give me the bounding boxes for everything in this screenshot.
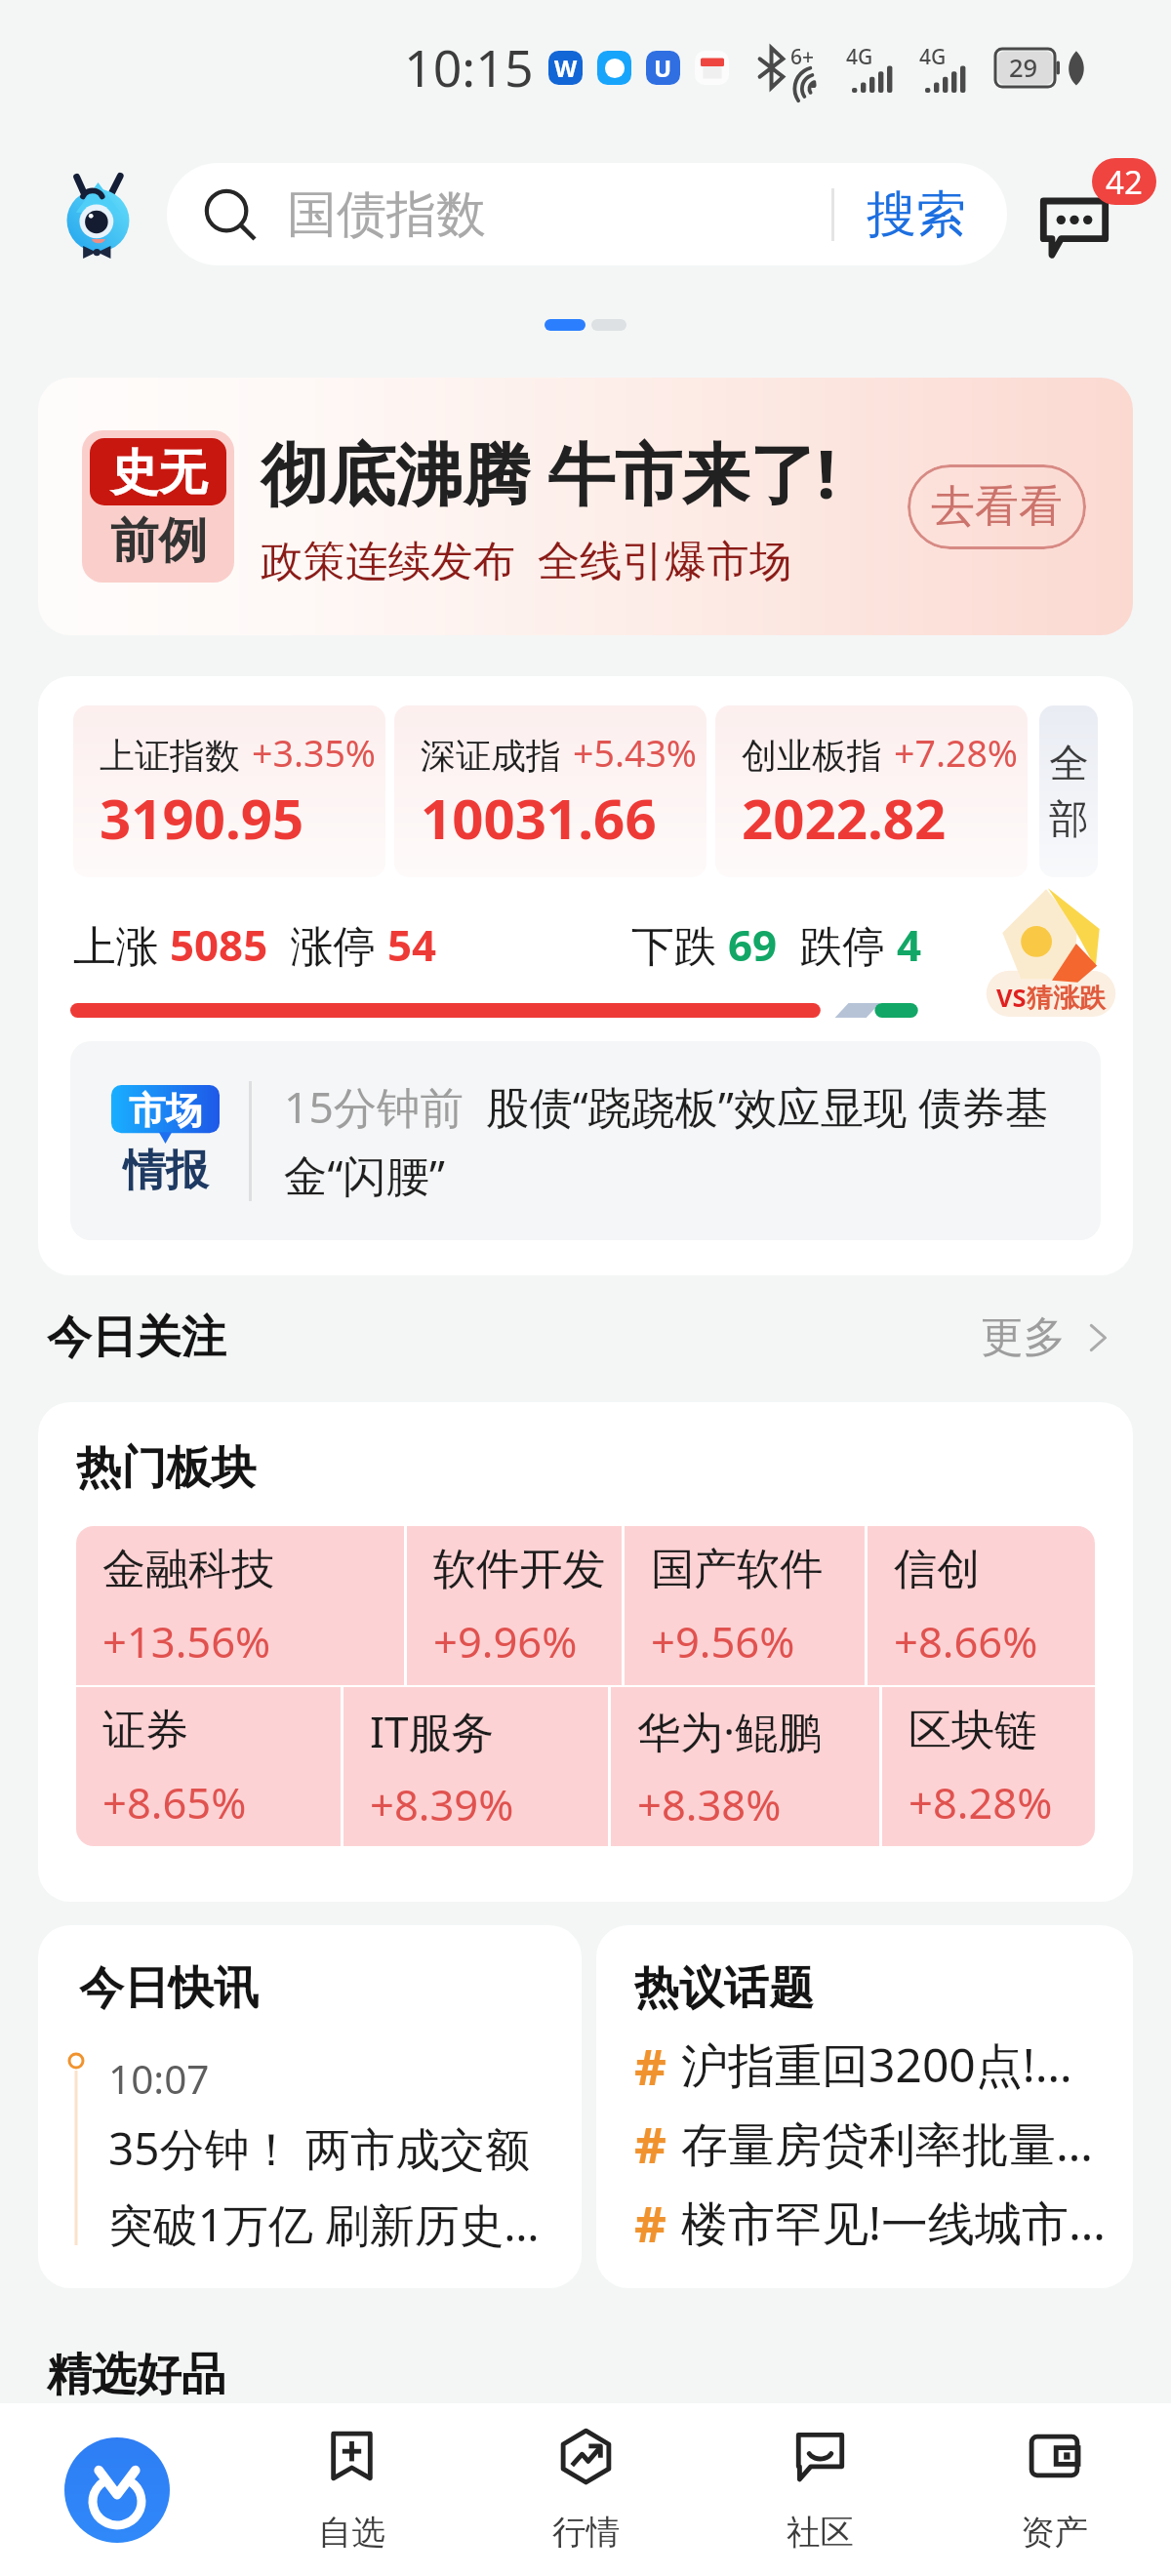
button[interactable]: Messages [1039, 155, 1156, 272]
staticText: W [554, 52, 578, 84]
staticText: 沪指重回3200点!… [681, 2033, 1072, 2097]
staticText: 深证成指 [421, 734, 561, 778]
staticText: 社区 [787, 2512, 854, 2554]
staticText: 金“闪腰” [284, 1146, 446, 1205]
button[interactable]: 信创 [868, 1526, 1095, 1685]
staticText: 股债“跷跷板”效应显现 债券基 [464, 1077, 1049, 1137]
button[interactable]: 社区 [703, 2403, 937, 2576]
staticText: 10:15 [404, 33, 534, 102]
staticText: 热议话题 [634, 1960, 814, 2017]
staticText: 资产 [1021, 2512, 1088, 2554]
staticText: # [634, 2110, 666, 2177]
staticText: 自选 [318, 2512, 385, 2554]
staticText: +13.56% [102, 1612, 271, 1670]
staticText: 35分钟！ 两市成交额 突破1万亿 刷新历史… [108, 2117, 540, 2254]
button[interactable]: 市场 [70, 1041, 1101, 1240]
staticText: 政策连续发布 全线引爆市场 [261, 530, 792, 587]
button[interactable]: 更多 [969, 1299, 1130, 1376]
staticText: 涨停 [268, 915, 387, 974]
button[interactable]: Home [0, 2403, 234, 2576]
staticText: 信创 [894, 1543, 981, 1597]
staticText: U [654, 52, 672, 84]
staticText: 跌停 [778, 915, 897, 974]
staticText: IT服务 [370, 1702, 495, 1760]
staticText: 今日快讯 [79, 1960, 259, 2017]
staticText: VS [996, 981, 1027, 1015]
staticText: 4G [846, 43, 873, 71]
button[interactable]: 猜涨跌 [984, 889, 1118, 1021]
staticText: 国产软件 [651, 1543, 824, 1597]
staticText: 热门板块 [76, 1440, 257, 1497]
staticText: 行情 [552, 2512, 620, 2554]
staticText: 全 部 [1049, 739, 1089, 844]
button[interactable]: 今日快讯 [38, 1925, 582, 2288]
staticText: +7.28% [894, 728, 1019, 778]
staticText: 15分钟前 [284, 1077, 464, 1137]
staticText: 搜索 [867, 183, 966, 246]
staticText: 下跌 [631, 915, 728, 974]
staticText: 存量房贷利率批量… [681, 2112, 1093, 2176]
staticText: 5085 [170, 915, 268, 974]
staticText: 上涨 [73, 915, 170, 974]
staticText: 市场 [129, 1088, 202, 1134]
staticText: 69 [728, 915, 778, 974]
staticText: 上证指数 [100, 734, 240, 778]
staticText: +8.66% [894, 1612, 1038, 1670]
button[interactable]: 证券 [76, 1687, 341, 1846]
staticText: 6+ [790, 43, 815, 71]
staticText: # [634, 2189, 666, 2256]
button[interactable]: 热议话题 [596, 1925, 1133, 2288]
staticText: 10031.66 [421, 781, 657, 856]
button[interactable]: IT服务 [343, 1687, 608, 1846]
staticText: 华为·鲲鹏 [637, 1702, 822, 1760]
button[interactable]: 华为·鲲鹏 [611, 1687, 879, 1846]
button[interactable]: 金融科技 [76, 1526, 404, 1685]
button[interactable]: 资产 [937, 2403, 1171, 2576]
button[interactable]: 国产软件 [625, 1526, 865, 1685]
staticText: +9.96% [433, 1612, 578, 1670]
staticText: +9.56% [651, 1612, 795, 1670]
staticText: 史无 [110, 442, 207, 503]
staticText: 10:07 [108, 2052, 210, 2106]
button[interactable]: 行情 [468, 2403, 703, 2576]
staticText: 创业板指 [742, 734, 882, 778]
staticText: 证券 [102, 1704, 189, 1758]
staticText: 猜涨跌 [1027, 982, 1106, 1015]
staticText: 去看看 [931, 479, 1063, 535]
staticText: 4 [897, 915, 922, 974]
staticText: 国债指数 [287, 183, 486, 246]
staticText: 前例 [110, 510, 207, 571]
button[interactable]: 深证成指 [394, 705, 707, 877]
staticText: 情报 [123, 1144, 208, 1197]
staticText: 今日关注 [47, 1309, 226, 1366]
other: Assistant [59, 169, 138, 260]
staticText: 3190.95 [100, 781, 304, 856]
staticText: 金融科技 [102, 1543, 275, 1597]
button[interactable]: 软件开发 [407, 1526, 622, 1685]
button[interactable]: 史无 [38, 378, 1133, 635]
button[interactable]: 全 部 [1039, 705, 1098, 877]
staticText: # [634, 2032, 666, 2099]
staticText: 29 [1009, 51, 1038, 85]
staticText: 区块链 [909, 1704, 1038, 1758]
staticText: +5.43% [573, 728, 698, 778]
button[interactable]: 去看看 [908, 464, 1086, 549]
staticText: 4G [919, 43, 947, 71]
staticText: +8.38% [637, 1775, 782, 1832]
button[interactable]: 上证指数 [73, 705, 385, 877]
staticText: +8.65% [102, 1773, 247, 1831]
staticText: +3.35% [252, 728, 377, 778]
button[interactable]: 国债指数 [167, 163, 1007, 265]
staticText: 54 [387, 915, 437, 974]
staticText: 42 [1106, 160, 1143, 204]
staticText: 更多 [981, 1310, 1066, 1364]
staticText: +8.28% [909, 1773, 1053, 1831]
staticText: +8.39% [370, 1775, 514, 1832]
staticText: 楼市罕见!一线城市… [681, 2191, 1106, 2255]
staticText: 彻底沸腾 牛市来了! [261, 426, 836, 518]
staticText: 2022.82 [742, 781, 947, 856]
button[interactable]: 自选 [234, 2403, 468, 2576]
button[interactable]: 区块链 [882, 1687, 1095, 1846]
staticText: 精选好品 [47, 2347, 226, 2403]
button[interactable]: 创业板指 [715, 705, 1028, 877]
